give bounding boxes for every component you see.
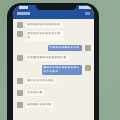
button[interactable]: Avatar <box>17 22 63 28</box>
other: Avatar <box>17 90 23 96</box>
other: Avatar <box>85 45 91 51</box>
button[interactable]: Avatar <box>17 90 44 96</box>
button[interactable]: Avatar <box>17 31 64 41</box>
button[interactable]: Avatar <box>13 65 91 75</box>
other: Avatar <box>85 65 91 71</box>
other: Avatar <box>17 78 23 84</box>
button[interactable]: Avatar <box>13 45 91 51</box>
button[interactable]: Avatar <box>17 102 54 108</box>
button[interactable]: Avatar <box>17 55 70 61</box>
other: Avatar <box>17 102 23 108</box>
button[interactable]: Avatar <box>17 78 57 84</box>
other: Avatar <box>17 55 23 61</box>
other: Avatar <box>17 22 23 28</box>
other: Avatar <box>17 31 23 37</box>
